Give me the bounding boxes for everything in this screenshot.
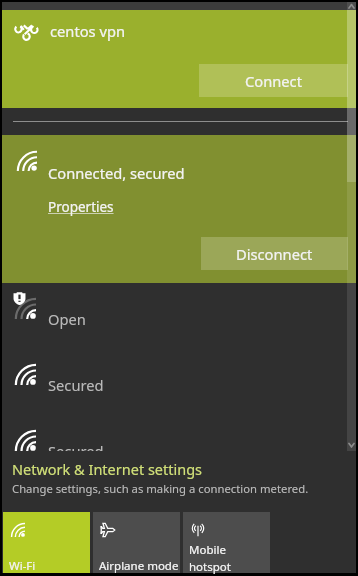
staticText: Wi-Fi [9,558,36,574]
staticText: Network & Internet settings [12,459,203,479]
staticText: Airplane mode [99,558,179,574]
staticText: Open [48,309,86,329]
staticText: Mobile hotspot [189,542,231,574]
staticText: Properties [48,198,114,216]
staticText: Secured [48,375,104,395]
other: Airplane mode [101,523,115,537]
button[interactable]: Network & Internet settings [12,459,203,479]
button[interactable]: Wi-Fi [3,512,90,573]
staticText: Secured [48,441,104,451]
other: Mobile hotspot [191,523,205,537]
button[interactable]: Open [2,283,356,349]
staticText: Connected, secured [48,163,185,183]
button[interactable]: Connected, secured [2,135,356,283]
button[interactable]: VPN [2,10,356,108]
button[interactable]: Mobile hotspot [183,512,270,573]
button[interactable]: Properties [48,198,114,216]
other: Scroll down [347,441,356,449]
button[interactable]: Secured [2,415,356,451]
button[interactable]: Airplane mode [93,512,180,573]
staticText: Change settings, such as making a connec… [12,481,309,496]
other: Scroll up [347,2,356,10]
staticText: centos vpn [50,21,126,41]
other: VPN [15,23,38,40]
button[interactable]: Secured [2,349,356,415]
staticText: Disconnect [236,244,313,264]
button[interactable]: Disconnect [201,237,348,270]
staticText: Connect [245,71,302,91]
button[interactable]: Connect [199,64,348,97]
